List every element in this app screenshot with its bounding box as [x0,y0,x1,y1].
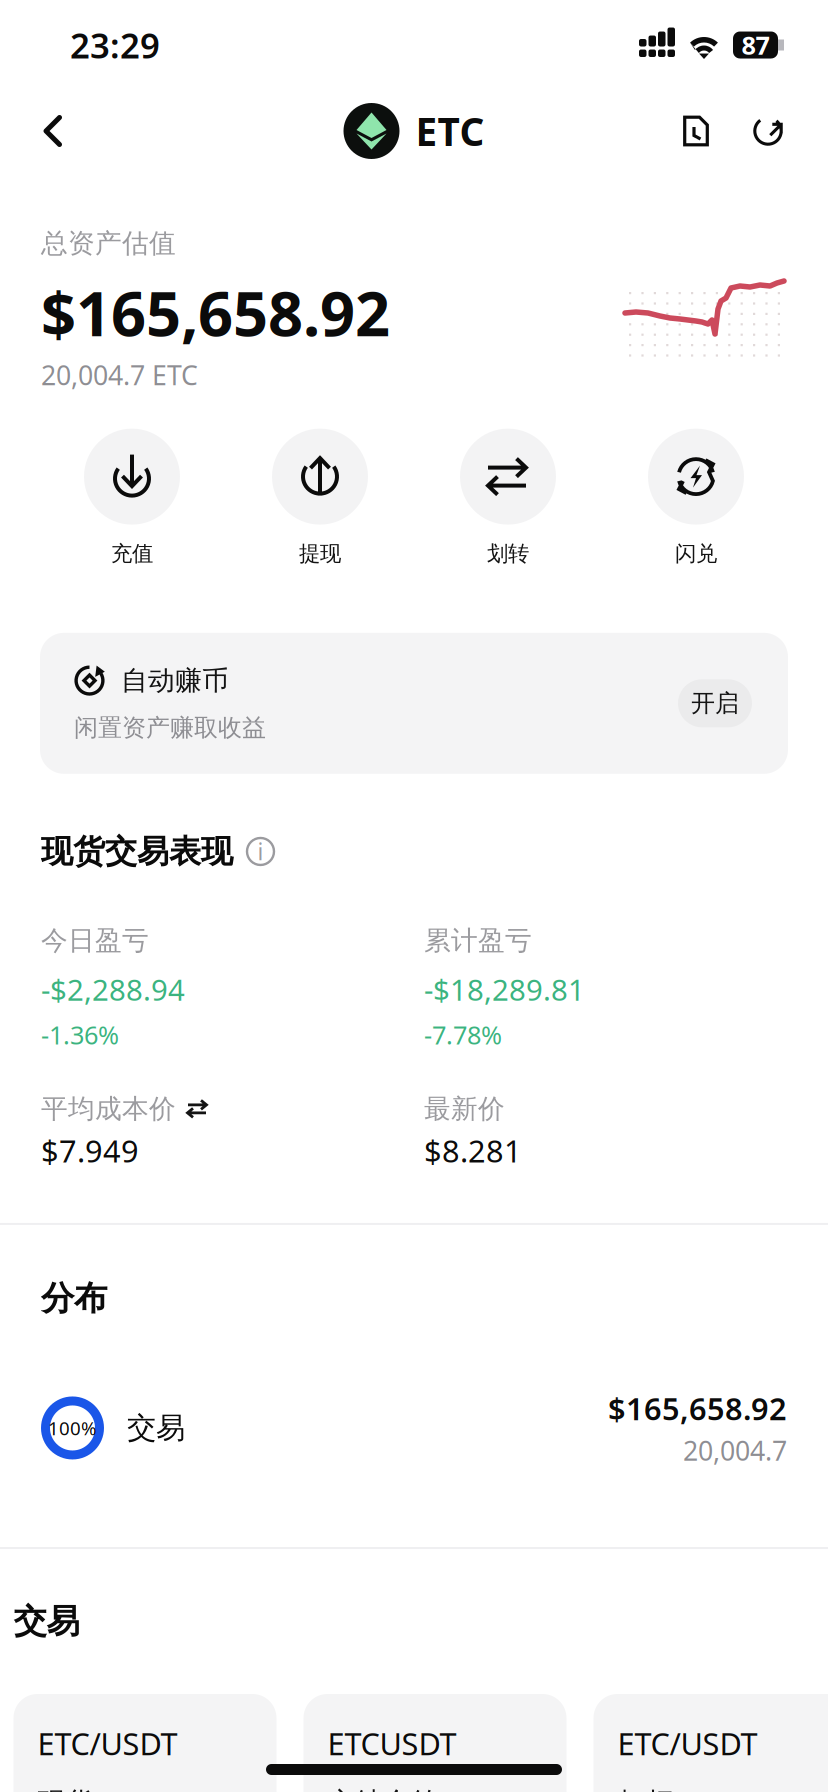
button[interactable]: 开启 [678,679,752,727]
staticText: 现货 [37,1786,93,1792]
staticText: 今日盈亏 [41,924,149,957]
staticText: ETCUSDT [327,1723,456,1764]
button[interactable]: ETCUSDT [303,1694,566,1792]
staticText: 交易 [13,1601,79,1642]
staticText: ETC/USDT [37,1723,177,1764]
button[interactable]: 提现 [226,429,414,567]
staticText: 平均成本价 [41,1092,176,1125]
staticText: $8.281 [424,1130,522,1171]
staticText: 闲置资产赚取收益 [74,713,266,743]
staticText: 提现 [299,541,341,567]
staticText: 87 [741,28,769,62]
staticText: 100% [48,1416,97,1440]
staticText: 现货交易表现 [41,832,233,871]
staticText: 总资产估值 [41,227,176,260]
button[interactable]: Transaction history [660,90,732,172]
staticText: 20,004.7 [683,1433,787,1468]
staticText: -$2,288.94 [41,970,185,1009]
staticText: 自动赚币 [121,664,229,697]
button[interactable]: Share [732,90,804,172]
staticText: $165,658.92 [41,272,390,353]
button[interactable]: 充值 [38,429,226,567]
button[interactable]: 划转 [414,429,602,567]
staticText: 开启 [691,689,739,718]
button[interactable]: Back [14,90,92,172]
staticText: -$18,289.81 [424,970,585,1009]
staticText: 交易 [127,1410,185,1446]
staticText: i [257,836,263,866]
button[interactable]: 闪兑 [602,429,790,567]
staticText: 20,004.7 ETC [41,357,198,393]
staticText: 闪兑 [675,541,717,567]
staticText: 最新价 [424,1092,505,1125]
staticText: $7.949 [41,1130,139,1171]
staticText: 23:29 [70,22,160,68]
staticText: 分布 [41,1278,107,1319]
staticText: -1.36% [41,1018,119,1051]
staticText: 累计盈亏 [424,924,532,957]
staticText: $165,658.92 [608,1388,787,1429]
staticText: ETC [415,105,484,157]
staticText: 永续合约 [327,1786,439,1792]
staticText: 充值 [111,541,153,567]
button[interactable]: ETC/USDT [593,1694,828,1792]
button[interactable]: ETC/USDT [13,1694,276,1792]
staticText: -7.78% [424,1018,502,1051]
staticText: 划转 [487,541,529,567]
staticText: ETC/USDT [617,1723,757,1764]
staticText: 杠杆 [617,1786,673,1792]
